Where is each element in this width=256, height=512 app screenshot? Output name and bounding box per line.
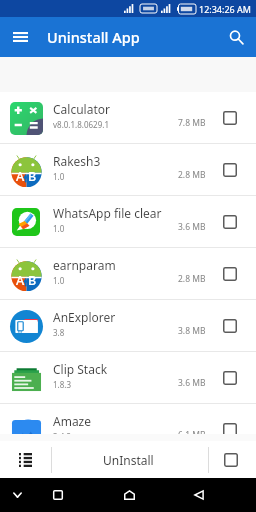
- button[interactable]: Clip Stack: [0, 352, 256, 403]
- staticText: 3.8: [53, 327, 65, 338]
- staticText: B: [28, 272, 37, 289]
- staticText: A: [16, 168, 25, 185]
- staticText: A: [16, 272, 25, 289]
- button[interactable]: A: [0, 248, 256, 299]
- staticText: Clip Stack: [53, 361, 108, 377]
- staticText: 3.6 MB: [178, 377, 206, 389]
- staticText: 3.6 MB: [178, 221, 206, 233]
- button[interactable]: Select Amaze: [212, 404, 248, 434]
- button[interactable]: WhatsApp file clear: [0, 196, 256, 247]
- staticText: WhatsApp file clear: [53, 205, 162, 221]
- staticText: Calculator: [53, 101, 110, 117]
- button[interactable]: Amaze: [0, 404, 256, 434]
- staticText: 1.0: [53, 223, 65, 234]
- staticText: 7.8 MB: [178, 117, 206, 129]
- button[interactable]: List view: [0, 441, 51, 478]
- staticText: 2.8 MB: [178, 169, 206, 181]
- button[interactable]: Select earnparam: [212, 248, 248, 299]
- button[interactable]: Select all: [209, 441, 253, 478]
- staticText: 1.8.3: [53, 379, 72, 390]
- staticText: 3.4.2: [53, 431, 72, 434]
- button[interactable]: Open navigation menu: [0, 17, 40, 57]
- staticText: Uninstall App: [47, 27, 140, 47]
- button[interactable]: Hide keyboard: [1, 478, 33, 512]
- button[interactable]: Home: [113, 478, 145, 512]
- staticText: Amaze: [53, 413, 92, 429]
- button[interactable]: Calculator: [0, 92, 256, 143]
- button[interactable]: UnInstall: [52, 441, 211, 478]
- staticText: 12:34:26 AM: [199, 3, 251, 15]
- staticText: v8.0.1.8.0629.1: [53, 119, 109, 130]
- staticText: AnExplorer: [53, 309, 116, 325]
- button[interactable]: Back: [183, 478, 215, 512]
- button[interactable]: Recent apps: [42, 478, 74, 512]
- button[interactable]: Select Clip Stack: [212, 352, 248, 403]
- staticText: Rakesh3: [53, 153, 101, 169]
- staticText: 1.0: [53, 171, 65, 182]
- button[interactable]: Select AnExplorer: [212, 300, 248, 351]
- button[interactable]: Select WhatsApp file clear: [212, 196, 248, 247]
- staticText: 3.8 MB: [178, 325, 206, 337]
- staticText: UnInstall: [103, 452, 154, 468]
- button[interactable]: A: [0, 144, 256, 195]
- staticText: 6.1 MB: [178, 429, 206, 434]
- staticText: B: [28, 168, 37, 185]
- button[interactable]: Select Calculator: [212, 92, 248, 143]
- staticText: 1.0: [53, 275, 65, 286]
- button[interactable]: AnExplorer: [0, 300, 256, 351]
- button[interactable]: Select Rakesh3: [212, 144, 248, 195]
- staticText: 2.8 MB: [178, 273, 206, 285]
- button[interactable]: Search: [216, 17, 256, 57]
- staticText: earnparam: [53, 257, 116, 273]
